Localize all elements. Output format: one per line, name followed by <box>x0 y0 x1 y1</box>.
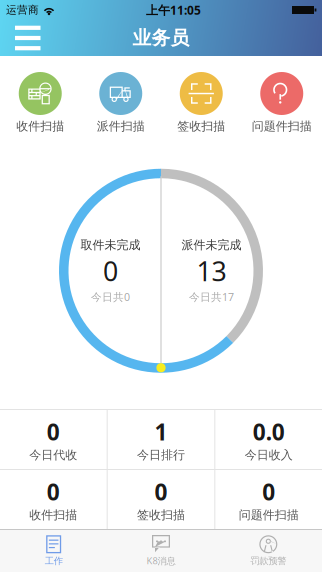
staticText: 派件扫描 <box>97 119 145 134</box>
button[interactable]: 收件扫描 <box>0 72 80 134</box>
button[interactable]: 0 <box>215 470 322 529</box>
staticText: 签收扫描 <box>177 119 225 134</box>
staticText: 问题件扫描 <box>239 508 299 522</box>
staticText: 收件扫描 <box>16 119 64 134</box>
button[interactable]: 0.0 <box>215 410 322 469</box>
button[interactable]: 0 <box>0 470 107 529</box>
button[interactable]: 菜单 <box>0 21 54 55</box>
staticText: 收件扫描 <box>29 508 77 522</box>
staticText: 运营商 <box>6 3 39 16</box>
button[interactable]: 0 <box>108 470 214 529</box>
staticText: 13 <box>196 253 226 289</box>
staticText: 0 <box>103 253 118 289</box>
staticText: 0 <box>262 477 275 507</box>
staticText: 今日共0 <box>91 290 130 304</box>
button[interactable]: 派件扫描 <box>80 72 161 134</box>
staticText: 签收扫描 <box>137 508 185 522</box>
staticText: 今日共17 <box>189 290 234 304</box>
staticText: 0 <box>154 477 167 507</box>
staticText: 工作 <box>45 555 63 567</box>
staticText: K8消息 <box>146 554 175 567</box>
staticText: 1 <box>154 417 167 447</box>
button[interactable]: K8消息 <box>107 530 215 572</box>
button[interactable]: 工作 <box>0 530 107 572</box>
staticText: 今日代收 <box>29 448 77 462</box>
staticText: 今日收入 <box>245 448 293 462</box>
button[interactable]: 问题件扫描 <box>241 72 322 134</box>
staticText: 上午11:05 <box>146 2 201 18</box>
button[interactable]: 0 <box>0 410 107 469</box>
button[interactable]: 签收扫描 <box>161 72 241 134</box>
staticText: 业务员 <box>132 26 189 49</box>
staticText: 0 <box>47 477 60 507</box>
button[interactable]: 罚款预警 <box>215 530 322 572</box>
staticText: 今日排行 <box>137 448 185 462</box>
staticText: 派件未完成 <box>181 238 241 252</box>
staticText: 0.0 <box>253 417 285 447</box>
staticText: 取件未完成 <box>80 238 140 252</box>
button[interactable]: 1 <box>108 410 214 469</box>
staticText: 问题件扫描 <box>252 119 312 134</box>
staticText: 罚款预警 <box>250 555 286 567</box>
staticText: 0 <box>47 417 60 447</box>
